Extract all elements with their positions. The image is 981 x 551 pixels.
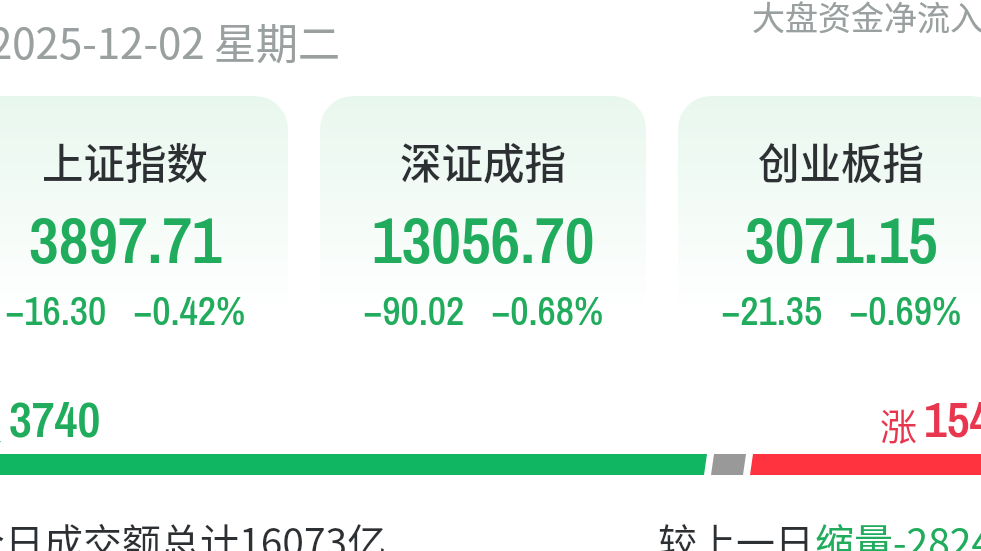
staticText: 创业板指: [758, 131, 925, 191]
staticText: 缩量-2824: [815, 512, 981, 551]
staticText: −16.30: [5, 284, 107, 338]
staticText: 2025-12-02 星期二: [0, 10, 341, 71]
staticText: −0.69%: [849, 284, 962, 338]
staticText: −0.42%: [133, 284, 246, 338]
staticText: 3740: [9, 385, 101, 452]
button[interactable]: 上证指数: [0, 96, 288, 365]
staticText: 3897.71: [29, 196, 222, 284]
staticText: 3071.15: [745, 196, 938, 284]
staticText: 较上一日: [658, 512, 815, 551]
staticText: 深证成指: [400, 131, 567, 191]
staticText: 13056.70: [372, 196, 595, 284]
staticText: 大盘资金净流入: [752, 0, 981, 40]
staticText: −90.02: [363, 284, 465, 338]
staticText: −0.68%: [491, 284, 604, 338]
staticText: 跌: [0, 398, 2, 452]
staticText: 今日成交额总计16073亿: [0, 512, 387, 551]
button[interactable]: 创业板指: [678, 96, 981, 365]
staticText: 上证指数: [42, 131, 209, 191]
button[interactable]: 深证成指: [320, 96, 646, 365]
staticText: 1547: [924, 385, 981, 452]
staticText: −21.35: [721, 284, 823, 338]
staticText: 涨: [880, 398, 917, 452]
